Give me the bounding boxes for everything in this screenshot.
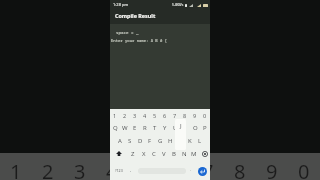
staticText: Enter your name: A B # [ [111, 38, 168, 43]
button[interactable]: V [159, 147, 169, 160]
button[interactable]: N [179, 147, 189, 160]
button[interactable]: 7 [170, 109, 180, 121]
button[interactable]: H [165, 134, 175, 147]
button[interactable]: S [125, 134, 135, 147]
staticText: 4 [143, 112, 147, 119]
button[interactable]: 9 [190, 109, 200, 121]
staticText: 9 [266, 158, 278, 180]
staticText: J [180, 122, 182, 130]
button[interactable]: M [189, 147, 199, 160]
button[interactable]: P [200, 121, 210, 134]
button[interactable]: Y [160, 121, 170, 134]
button[interactable]: 4 [140, 109, 150, 121]
staticText: 1:28 pm [113, 2, 129, 7]
staticText: N [182, 150, 187, 158]
staticText: 6 [163, 112, 167, 119]
button[interactable]: A [115, 134, 125, 147]
staticText: U [173, 124, 178, 132]
button[interactable]: K [185, 134, 195, 147]
staticText: I [184, 124, 187, 132]
staticText: P [203, 124, 207, 132]
staticText: E [133, 124, 137, 132]
button[interactable]: 8 [180, 109, 190, 121]
staticText: G [158, 137, 163, 145]
staticText: L [198, 137, 202, 145]
staticText: ?123 [115, 168, 123, 173]
staticText: 0 [298, 158, 310, 180]
staticText: W [122, 124, 128, 132]
staticText: A [118, 137, 122, 145]
button[interactable]: R [140, 121, 150, 134]
staticText: 4 [106, 158, 118, 180]
staticText: 1 [10, 158, 22, 180]
button[interactable]: U [170, 121, 180, 134]
staticText: S [128, 137, 132, 145]
staticText: 0 [203, 112, 207, 119]
staticText: Z [131, 150, 135, 158]
button[interactable]: Z [127, 147, 138, 160]
button[interactable]: B [169, 147, 179, 160]
staticText: X [142, 150, 146, 158]
staticText: 3 [74, 158, 86, 180]
button[interactable]: X [138, 147, 149, 160]
staticText: M [191, 150, 197, 158]
button[interactable]: ?123 [110, 160, 127, 180]
staticText: , [130, 167, 132, 173]
staticText: 7 [173, 112, 177, 119]
staticText: F [148, 137, 152, 145]
button[interactable]: E [130, 121, 140, 134]
button[interactable]: W [120, 121, 130, 134]
button[interactable]: 5 [150, 109, 160, 121]
button[interactable]: 2 [120, 109, 130, 121]
button[interactable]: , [126, 160, 135, 180]
staticText: 6 [170, 158, 182, 180]
staticText: C [152, 150, 156, 158]
button[interactable]: Enter [198, 167, 207, 176]
staticText: Y [163, 124, 167, 132]
button[interactable]: 0 [200, 109, 210, 121]
button[interactable]: 6 [160, 109, 170, 121]
button[interactable]: L [195, 134, 205, 147]
button[interactable]: Shift [110, 147, 127, 160]
staticText: . [190, 167, 192, 173]
staticText: R [143, 124, 147, 132]
staticText: O [193, 124, 198, 132]
button[interactable]: I [180, 121, 190, 134]
staticText: D [138, 137, 143, 145]
staticText: H [168, 137, 173, 145]
staticText: 8 [234, 158, 246, 180]
staticText: V [162, 150, 166, 158]
staticText: Compile Result [115, 12, 156, 19]
staticText: 8 [183, 112, 187, 119]
button[interactable]: Q [110, 121, 120, 134]
staticText: B [172, 150, 176, 158]
button[interactable]: C [149, 147, 159, 160]
button[interactable]: F [145, 134, 155, 147]
button[interactable]: O [190, 121, 200, 134]
staticText: 1 [113, 112, 117, 119]
staticText: K [188, 137, 192, 145]
staticText: 5.4KB/s [172, 3, 184, 7]
staticText: 7 [202, 158, 214, 180]
button[interactable]: T [150, 121, 160, 134]
button[interactable]: 1 [110, 109, 120, 121]
staticText: 2 [123, 112, 127, 119]
button[interactable]: D [135, 134, 145, 147]
staticText: 3 [133, 112, 137, 119]
button[interactable]: G [155, 134, 165, 147]
staticText: space = _ [116, 30, 139, 36]
staticText: 5 [138, 158, 150, 180]
staticText: 9 [193, 112, 197, 119]
staticText: 2 [42, 158, 54, 180]
button[interactable]: 3 [130, 109, 140, 121]
staticText: T [153, 124, 157, 132]
staticText: 5 [153, 112, 157, 119]
button[interactable]: Backspace [199, 147, 210, 160]
staticText: Q [113, 124, 118, 132]
